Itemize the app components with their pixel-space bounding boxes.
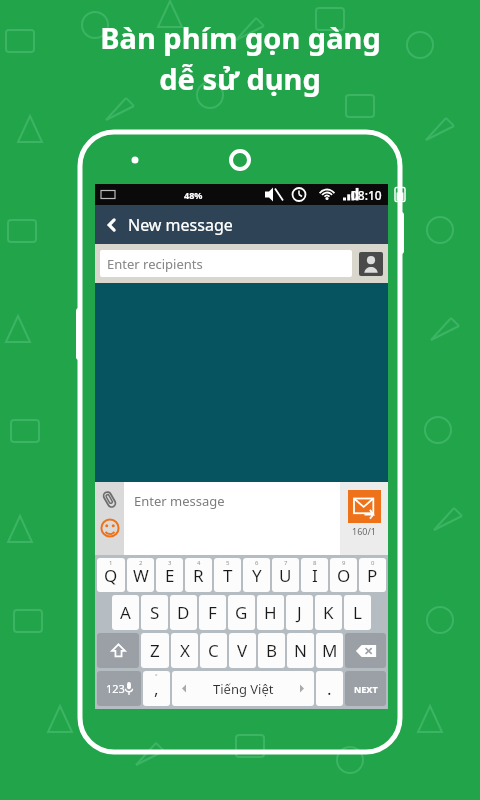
staticText: 48%	[184, 189, 203, 201]
staticText: °	[155, 672, 158, 680]
staticText: W	[133, 564, 149, 587]
staticText: Q	[104, 564, 118, 587]
button[interactable]: Back	[95, 205, 388, 244]
staticText: S	[150, 601, 160, 624]
button[interactable]: Enter message	[124, 482, 340, 555]
staticText: K	[323, 601, 334, 624]
staticText: U	[279, 564, 292, 587]
button[interactable]: G	[228, 595, 255, 630]
staticText: 3	[168, 559, 172, 567]
staticText: N	[294, 639, 307, 662]
staticText: L	[353, 601, 362, 624]
button[interactable]: F	[199, 595, 226, 630]
staticText: D	[177, 601, 190, 624]
staticText: I	[312, 564, 318, 587]
button[interactable]: Numbers and voice input	[97, 671, 141, 706]
button[interactable]: Send	[348, 490, 381, 523]
button[interactable]: K	[315, 595, 342, 630]
staticText: 08:10	[351, 187, 382, 203]
button[interactable]: 5	[214, 558, 241, 592]
button[interactable]: H	[257, 595, 284, 630]
staticText: Z	[150, 639, 160, 662]
button[interactable]: Backspace	[345, 633, 386, 668]
staticText: B	[266, 639, 278, 662]
button[interactable]: NEXT	[345, 671, 386, 706]
button[interactable]: 4	[185, 558, 212, 592]
staticText: 5	[226, 559, 230, 567]
button[interactable]: D	[170, 595, 197, 630]
button[interactable]: 7	[272, 558, 299, 592]
staticText: R	[193, 564, 204, 587]
button[interactable]: V	[229, 633, 256, 668]
button[interactable]: 8	[301, 558, 328, 592]
button[interactable]: Z	[141, 633, 169, 668]
staticText: A	[120, 601, 131, 624]
staticText: 123	[106, 681, 125, 696]
button[interactable]: 3	[156, 558, 183, 592]
staticText: X	[180, 639, 190, 662]
staticText: dễ sử dụng	[159, 59, 321, 98]
staticText: 9	[342, 559, 346, 567]
button[interactable]: B	[258, 633, 285, 668]
staticText: F	[208, 601, 217, 624]
button[interactable]: X	[171, 633, 198, 668]
button[interactable]: A	[112, 595, 139, 630]
button[interactable]: N	[287, 633, 314, 668]
button[interactable]: 2	[127, 558, 154, 592]
button[interactable]: °	[143, 671, 170, 706]
button[interactable]: C	[200, 633, 227, 668]
button[interactable]: L	[344, 595, 371, 630]
staticText: 8	[313, 559, 317, 567]
staticText: 0	[371, 559, 375, 567]
staticText: New message	[128, 214, 233, 236]
staticText: C	[208, 639, 219, 662]
staticText: H	[264, 601, 277, 624]
staticText: NEXT	[354, 683, 378, 695]
staticText: V	[237, 639, 248, 662]
button[interactable]: 9	[330, 558, 357, 592]
button[interactable]: Enter recipients	[100, 250, 352, 277]
staticText: 4	[197, 559, 201, 567]
staticText: .	[327, 677, 332, 700]
staticText: 160/1	[352, 525, 376, 537]
button[interactable]: J	[286, 595, 313, 630]
staticText: Enter recipients	[107, 255, 203, 273]
staticText: Y	[252, 564, 262, 587]
staticText: E	[165, 564, 175, 587]
staticText: Enter message	[134, 492, 225, 510]
button[interactable]: 0	[359, 558, 386, 592]
button[interactable]: Tiếng Việt	[172, 671, 314, 706]
button[interactable]: M	[316, 633, 343, 668]
staticText: ,	[154, 677, 159, 700]
button[interactable]: Shift	[97, 633, 139, 668]
staticText: 1	[109, 559, 113, 567]
button[interactable]: 6	[243, 558, 270, 592]
staticText: 2	[139, 559, 143, 567]
staticText: O	[337, 564, 351, 587]
other: Back	[103, 216, 121, 234]
staticText: T	[223, 564, 233, 587]
staticText: M	[322, 639, 338, 662]
staticText: Bàn phím gọn gàng	[100, 18, 381, 57]
button[interactable]: Add contact	[359, 252, 383, 276]
button[interactable]: 1	[97, 558, 125, 592]
staticText: 6	[255, 559, 259, 567]
button[interactable]: Attach	[100, 490, 119, 509]
staticText: G	[235, 601, 248, 624]
staticText: 7	[284, 559, 288, 567]
button[interactable]: .	[316, 671, 343, 706]
staticText: Tiếng Việt	[213, 680, 274, 698]
staticText: J	[297, 601, 302, 624]
staticText: P	[367, 564, 378, 587]
button[interactable]: Emoji	[100, 518, 120, 538]
button[interactable]: S	[141, 595, 168, 630]
